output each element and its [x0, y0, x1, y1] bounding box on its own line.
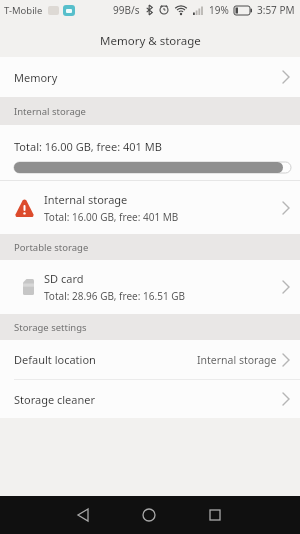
staticText: Storage cleaner — [14, 392, 96, 407]
button[interactable]: Default location — [0, 340, 300, 379]
button[interactable] — [196, 496, 234, 534]
staticText: T-Mobile — [4, 4, 43, 17]
button[interactable]: Internal storage — [0, 181, 300, 234]
staticText: SD card — [44, 271, 84, 286]
staticText: Memory & storage — [100, 33, 201, 49]
button[interactable] — [130, 496, 168, 534]
staticText: Total: 16.00 GB, free: 401 MB — [14, 139, 162, 154]
staticText: Total: 28.96 GB, free: 16.51 GB — [44, 289, 185, 303]
staticText: Internal storage — [197, 353, 277, 367]
staticText: 19% — [209, 3, 229, 17]
button[interactable]: Memory — [0, 57, 300, 97]
staticText: Internal storage — [14, 105, 86, 118]
staticText: 99B/s — [113, 3, 140, 17]
staticText: Storage settings — [14, 321, 87, 334]
staticText: Portable storage — [14, 241, 89, 254]
staticText: Internal storage — [44, 192, 128, 207]
staticText: Default location — [14, 352, 96, 367]
button[interactable]: SD card — [0, 260, 300, 314]
staticText: Memory — [14, 70, 58, 85]
staticText: 3:57 PM — [257, 3, 295, 17]
staticText: Total: 16.00 GB, free: 401 MB — [44, 210, 179, 224]
button[interactable]: Storage cleaner — [0, 380, 300, 418]
button[interactable] — [64, 496, 102, 534]
